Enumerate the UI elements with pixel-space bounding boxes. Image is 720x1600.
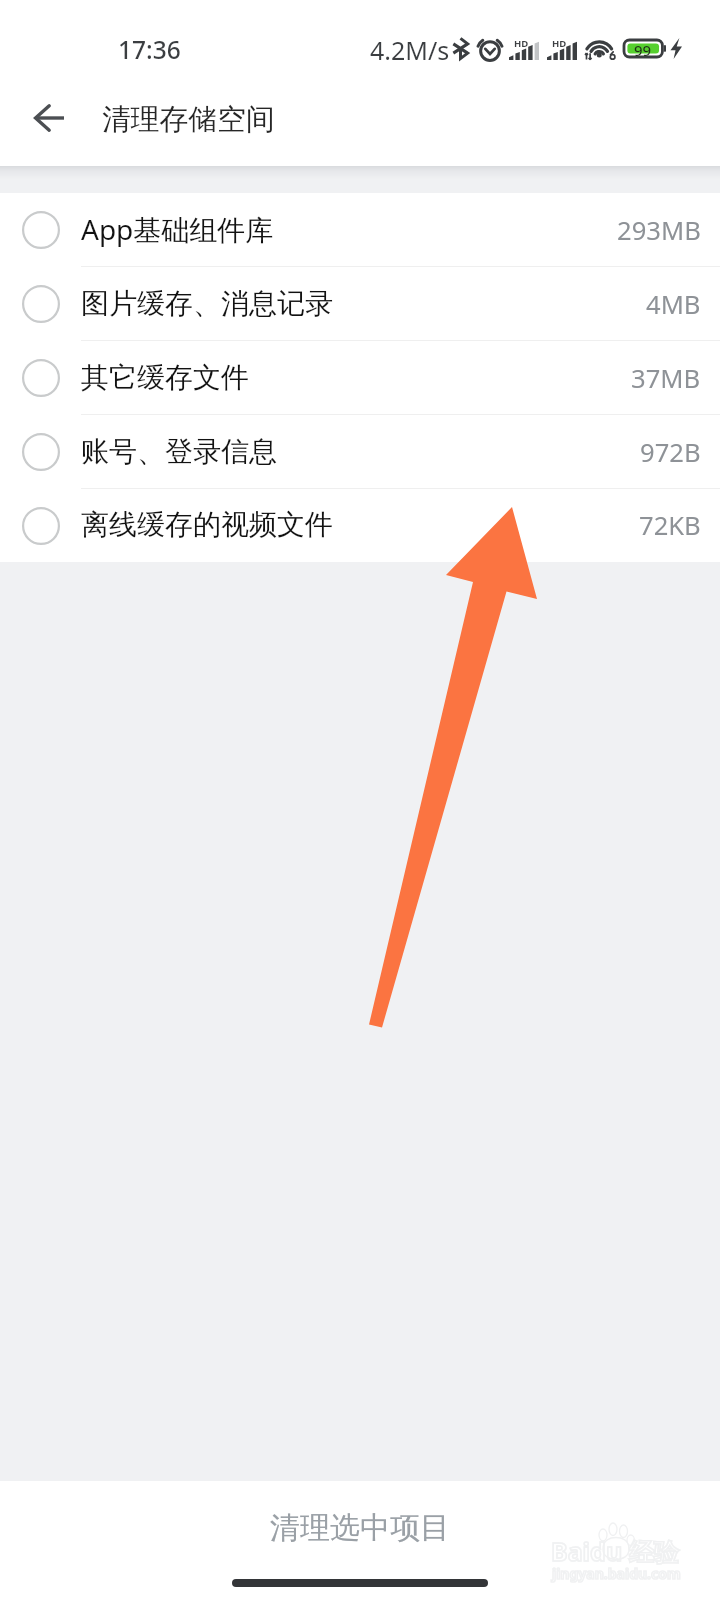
staticText: 清理选中项目 bbox=[270, 1509, 450, 1547]
staticText: 4.2M/s bbox=[370, 33, 450, 67]
button[interactable]: 图片缓存、消息记录 bbox=[0, 267, 720, 341]
staticText: 293MB bbox=[617, 213, 701, 248]
staticText: HD bbox=[552, 37, 567, 50]
staticText: Baidu 经验 bbox=[551, 1534, 679, 1568]
staticText: 图片缓存、消息记录 bbox=[81, 286, 646, 321]
staticText: 17:36 bbox=[118, 33, 181, 66]
staticText: HD bbox=[514, 37, 529, 50]
staticText: 账号、登录信息 bbox=[81, 434, 640, 469]
button[interactable]: 离线缓存的视频文件 bbox=[0, 489, 720, 562]
staticText: App基础组件库 bbox=[81, 210, 617, 248]
button[interactable]: Back bbox=[14, 75, 84, 161]
button[interactable]: App基础组件库 bbox=[0, 193, 720, 267]
button[interactable]: 账号、登录信息 bbox=[0, 415, 720, 489]
staticText: jingyan.baidu.com bbox=[552, 1564, 681, 1583]
staticText: 972B bbox=[640, 435, 701, 470]
staticText: 4MB bbox=[646, 287, 701, 322]
staticText: 99 bbox=[634, 40, 652, 57]
staticText: 37MB bbox=[631, 361, 701, 396]
staticText: 其它缓存文件 bbox=[81, 360, 631, 395]
button[interactable]: 其它缓存文件 bbox=[0, 341, 720, 415]
staticText: 清理存储空间 bbox=[102, 101, 275, 137]
staticText: 离线缓存的视频文件 bbox=[81, 507, 639, 542]
button[interactable]: 清理选中项目 bbox=[0, 1481, 720, 1573]
staticText: 72KB bbox=[639, 508, 701, 543]
